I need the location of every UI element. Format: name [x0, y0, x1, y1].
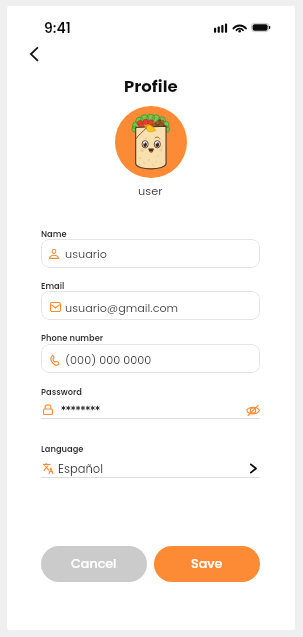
- button[interactable]: [41, 291, 260, 320]
- staticText: Save: [191, 555, 223, 573]
- button[interactable]: [41, 344, 260, 373]
- staticText: Email: [41, 280, 65, 292]
- staticText: usuario: [65, 246, 107, 262]
- staticText: user: [138, 183, 163, 199]
- staticText: Cancel: [71, 555, 117, 573]
- button[interactable]: [41, 459, 260, 477]
- button[interactable]: Cancel: [41, 546, 147, 582]
- button[interactable]: Save: [154, 546, 260, 582]
- staticText: Español: [58, 461, 103, 477]
- staticText: usuario@gmail.com: [65, 300, 179, 316]
- staticText: Name: [41, 228, 67, 240]
- staticText: Phone number: [41, 332, 104, 344]
- staticText: Language: [41, 443, 84, 455]
- button[interactable]: Back: [24, 42, 44, 62]
- staticText: 9:41: [44, 18, 71, 38]
- staticText: Profile: [124, 75, 178, 98]
- button[interactable]: [41, 239, 260, 268]
- staticText: (000) 000 0000: [65, 352, 152, 368]
- staticText: Password: [41, 386, 82, 398]
- button[interactable]: Show password: [243, 401, 262, 418]
- button[interactable]: [41, 400, 260, 418]
